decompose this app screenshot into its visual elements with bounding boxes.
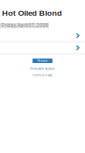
staticText: Hot Oiled Blond [2,8,62,17]
staticText: Powered by Blogger. [31,74,53,77]
button[interactable]: View web version [30,67,55,70]
button[interactable]: Home [32,58,52,63]
staticText: View web version [30,67,55,70]
staticText: Home [37,59,47,63]
button[interactable]: Open post [0,43,85,53]
staticText: Friday, April 07, 2006 [1,23,48,28]
button[interactable]: Open post [0,31,85,41]
